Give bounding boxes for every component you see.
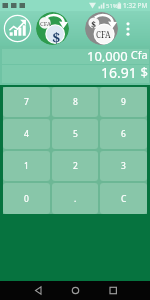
button[interactable]: 2: [52, 151, 98, 181]
button[interactable]: 7: [3, 87, 50, 117]
button[interactable]: .: [52, 183, 98, 214]
staticText: 3: [121, 160, 126, 172]
button[interactable]: 5: [52, 119, 98, 149]
staticText: Cfa: [128, 47, 148, 62]
button[interactable]: 6: [100, 119, 147, 149]
staticText: $: [52, 27, 61, 45]
staticText: 2: [73, 160, 78, 172]
button[interactable]: 4: [3, 119, 50, 149]
button[interactable]: 1: [3, 151, 50, 181]
staticText: 51%: [106, 2, 118, 10]
staticText: 7: [24, 96, 29, 108]
button[interactable]: 8: [52, 87, 98, 117]
staticText: $: [91, 18, 97, 30]
button[interactable]: Convert CFA to Dollar: [36, 12, 69, 45]
staticText: 8: [73, 96, 78, 108]
staticText: $: [137, 63, 148, 81]
button[interactable]: More options: [121, 22, 135, 36]
button[interactable]: 0: [3, 183, 50, 214]
staticText: 4: [24, 128, 29, 140]
staticText: .: [74, 193, 77, 205]
staticText: 6: [121, 128, 126, 140]
staticText: 0: [24, 193, 29, 205]
staticText: 1:32 PM: [123, 1, 148, 10]
staticText: 10,000: [87, 47, 128, 62]
button[interactable]: 9: [100, 87, 147, 117]
staticText: CFA: [96, 29, 111, 40]
button[interactable]: Convert Dollar to CFA: [85, 12, 118, 45]
button[interactable]: Statistics: [3, 14, 32, 43]
staticText: 5: [73, 128, 78, 140]
staticText: CFA: [40, 20, 52, 28]
staticText: 9: [121, 96, 126, 108]
staticText: 1: [24, 160, 29, 172]
staticText: 16.91: [101, 63, 137, 81]
button[interactable]: C: [100, 183, 147, 214]
staticText: C: [121, 193, 127, 205]
button[interactable]: 3: [100, 151, 147, 181]
